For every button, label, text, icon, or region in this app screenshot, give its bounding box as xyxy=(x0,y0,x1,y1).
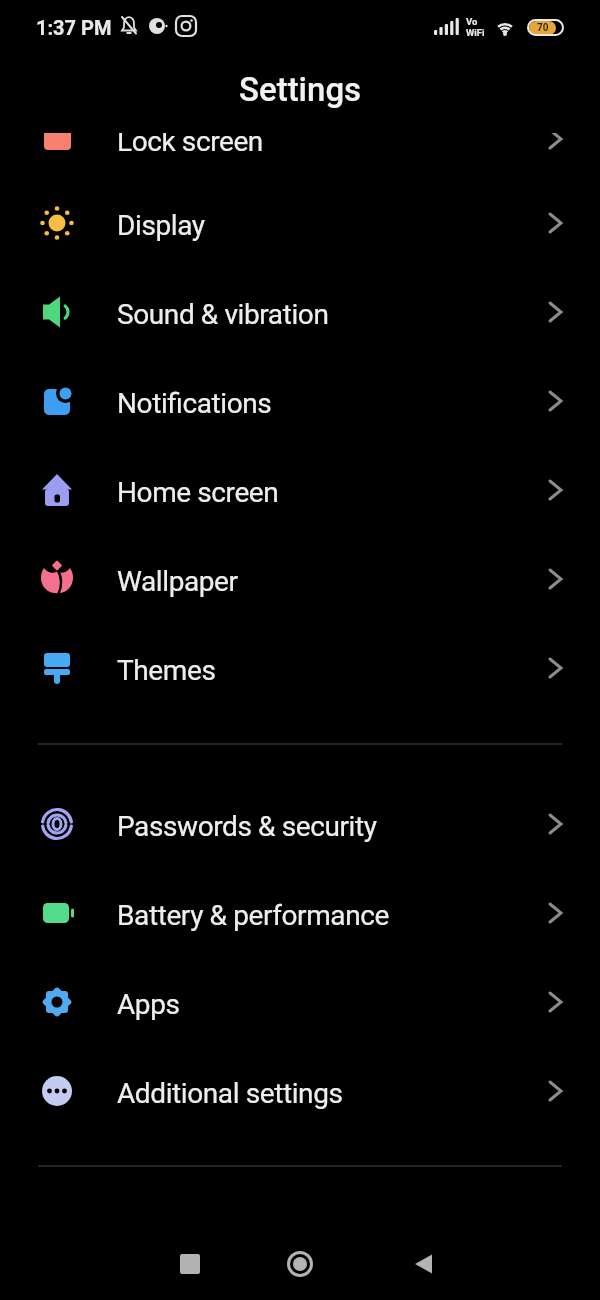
staticText: Wallpaper xyxy=(117,565,238,598)
staticText: 1:37 PM xyxy=(36,16,112,39)
button[interactable]: Apps xyxy=(0,958,600,1046)
staticText: Apps xyxy=(117,988,180,1021)
button[interactable]: Lock screen xyxy=(0,133,600,183)
button[interactable]: Notifications xyxy=(0,357,600,445)
staticText: Notifications xyxy=(117,387,272,420)
button[interactable]: Additional settings xyxy=(0,1047,600,1135)
button[interactable]: Themes xyxy=(0,624,600,712)
staticText: Passwords & security xyxy=(117,810,377,843)
staticText: Home screen xyxy=(117,476,279,509)
staticText: Sound & vibration xyxy=(117,298,329,331)
button[interactable] xyxy=(414,1254,434,1274)
button[interactable]: Sound & vibration xyxy=(0,268,600,356)
staticText: Themes xyxy=(117,654,216,687)
staticText: Settings xyxy=(239,70,362,109)
staticText: Battery & performance xyxy=(117,899,389,932)
staticText: WiFi xyxy=(466,27,485,38)
button[interactable]: Home screen xyxy=(0,446,600,534)
staticText: 70 xyxy=(537,22,549,34)
button[interactable]: Display xyxy=(0,179,600,267)
button[interactable] xyxy=(180,1254,200,1274)
button[interactable]: Battery & performance xyxy=(0,869,600,957)
button[interactable] xyxy=(287,1251,313,1277)
button[interactable]: Wallpaper xyxy=(0,535,600,623)
staticText: Additional settings xyxy=(117,1077,343,1110)
staticText: Display xyxy=(117,209,205,242)
staticText: Vo xyxy=(466,16,478,27)
button[interactable]: Passwords & security xyxy=(0,780,600,868)
staticText: Lock screen xyxy=(117,133,263,158)
